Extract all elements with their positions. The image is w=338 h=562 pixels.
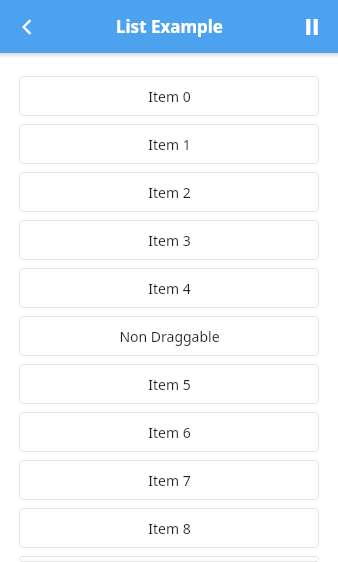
button[interactable]: Item 4 bbox=[19, 268, 319, 308]
button[interactable]: Item 0 bbox=[19, 76, 319, 116]
button[interactable]: Back bbox=[6, 5, 50, 49]
staticText: List Example bbox=[116, 15, 223, 38]
button[interactable]: Item 2 bbox=[19, 172, 319, 212]
staticText: Item 5 bbox=[148, 375, 191, 394]
staticText: Item 2 bbox=[148, 183, 191, 202]
button[interactable]: Item 7 bbox=[19, 460, 319, 500]
staticText: Item 6 bbox=[148, 423, 191, 442]
staticText: Item 3 bbox=[148, 231, 191, 250]
button[interactable]: Item 9 bbox=[19, 556, 319, 562]
button[interactable]: Pause bbox=[290, 5, 334, 49]
button[interactable]: Item 5 bbox=[19, 364, 319, 404]
button[interactable]: Item 6 bbox=[19, 412, 319, 452]
staticText: Item 8 bbox=[148, 519, 191, 538]
button[interactable]: Item 8 bbox=[19, 508, 319, 548]
button[interactable]: Item 3 bbox=[19, 220, 319, 260]
staticText: Item 9 bbox=[148, 556, 191, 562]
button[interactable]: Item 1 bbox=[19, 124, 319, 164]
staticText: Item 4 bbox=[148, 279, 191, 298]
staticText: Item 7 bbox=[148, 471, 191, 490]
button[interactable]: Non Draggable bbox=[19, 316, 319, 356]
staticText: Non Draggable bbox=[119, 327, 220, 346]
staticText: Item 1 bbox=[148, 135, 191, 154]
staticText: Item 0 bbox=[148, 87, 191, 106]
